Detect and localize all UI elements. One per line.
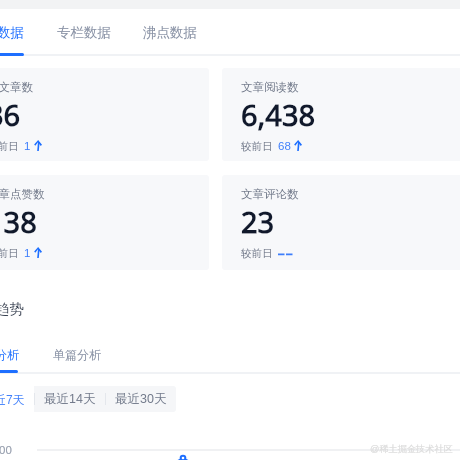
staticText: 文章数据 (0, 24, 24, 41)
staticText: @稀土掘金技术社区 (370, 443, 453, 455)
button[interactable]: 文章评论数 (222, 175, 460, 270)
staticText: 较前日 (241, 247, 273, 260)
staticText: 最近30天 (115, 391, 167, 407)
staticText: 最近14天 (44, 391, 96, 407)
staticText: 36 (0, 95, 21, 134)
staticText: 23 (241, 202, 275, 241)
staticText: 1 (24, 140, 31, 153)
button[interactable]: 专栏数据 (57, 24, 111, 41)
button[interactable]: 最近7天 (0, 386, 34, 412)
staticText: 文章点赞数 (0, 187, 45, 201)
staticText: 较前日 (0, 140, 19, 153)
button[interactable]: 文章阅读数 (222, 68, 460, 161)
staticText: 最近7天 (0, 392, 25, 407)
staticText: 6,438 (241, 95, 316, 134)
staticText: 总文章数 (0, 80, 33, 94)
button[interactable]: 单篇分析 (53, 347, 101, 362)
staticText: 整体分析 (0, 347, 19, 362)
staticText: 较前日 (0, 247, 19, 260)
staticText: 68 (278, 140, 291, 153)
staticText: 较前日 (241, 140, 273, 153)
staticText: 专栏数据 (57, 24, 111, 41)
button[interactable]: 文章点赞数 (0, 175, 209, 270)
staticText: 文章趋势 (0, 300, 24, 318)
button[interactable]: 最近14天 (35, 386, 105, 412)
button[interactable]: 文章数据 (0, 24, 24, 41)
staticText: 1 (24, 247, 31, 260)
staticText: 文章评论数 (241, 187, 299, 201)
button[interactable]: 最近30天 (106, 386, 176, 412)
staticText: 单篇分析 (53, 347, 101, 362)
button[interactable]: 整体分析 (0, 347, 19, 362)
button[interactable]: 沸点数据 (143, 24, 197, 41)
staticText: 1,000 (0, 444, 12, 457)
staticText: 文章阅读数 (241, 80, 299, 94)
button[interactable]: 总文章数 (0, 68, 209, 161)
staticText: 沸点数据 (143, 24, 197, 41)
staticText: 138 (0, 202, 37, 241)
